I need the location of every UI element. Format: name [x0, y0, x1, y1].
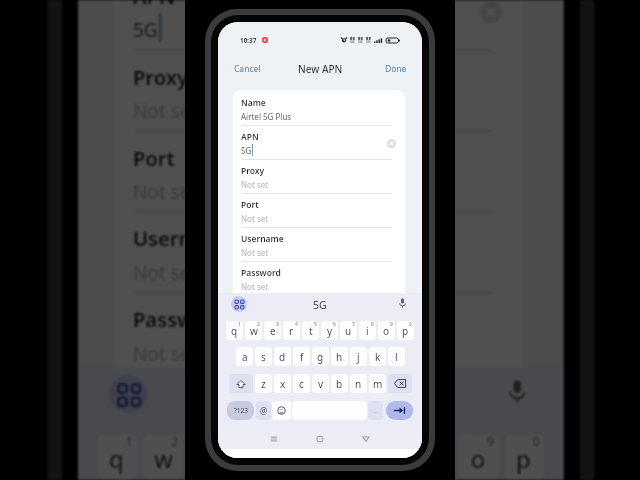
button[interactable]: d [274, 347, 291, 366]
staticText: r [247, 442, 259, 475]
button[interactable]: Emoji [272, 401, 291, 420]
button[interactable]: Enter [386, 401, 413, 420]
staticText: 5G [133, 16, 159, 42]
staticText: Proxy [241, 165, 265, 177]
staticText: k [375, 350, 381, 364]
staticText: y [327, 324, 333, 338]
staticText: s [261, 350, 266, 364]
staticText: 0 [533, 434, 540, 451]
staticText: 7 [397, 434, 404, 451]
button[interactable]: n [350, 374, 367, 393]
button[interactable]: l [388, 347, 405, 366]
staticText: @ [260, 405, 268, 416]
button[interactable]: j [350, 347, 367, 366]
staticText: 10:37 [240, 36, 257, 45]
button[interactable]: t [302, 321, 319, 340]
staticText: 2 [171, 434, 178, 451]
button[interactable]: h [331, 347, 348, 366]
staticText: a [242, 350, 248, 364]
button[interactable]: f [293, 347, 310, 366]
button[interactable]: u [340, 321, 357, 340]
button[interactable]: APN [114, 0, 523, 51]
button[interactable]: s [255, 347, 272, 366]
button[interactable]: w [245, 321, 262, 340]
button[interactable]: u [368, 434, 409, 480]
button[interactable]: k [369, 347, 386, 366]
button[interactable]: o [459, 434, 499, 480]
staticText: Not set [133, 339, 199, 365]
staticText: 3 [216, 434, 223, 451]
button[interactable]: Port [114, 132, 523, 213]
button[interactable]: Proxy [114, 51, 523, 132]
button[interactable]: r [283, 321, 300, 340]
button[interactable]: Keyboard settings [231, 296, 247, 312]
button[interactable]: y [321, 321, 338, 340]
button[interactable]: Proxy [233, 160, 405, 194]
staticText: o [383, 324, 390, 338]
button[interactable]: Port [233, 194, 405, 228]
button[interactable]: b [331, 374, 348, 393]
button[interactable]: c [293, 374, 310, 393]
button[interactable]: @ [256, 401, 271, 420]
button[interactable]: w [142, 434, 183, 480]
staticText: Cancel [234, 63, 261, 75]
button[interactable]: m [369, 374, 386, 393]
staticText: Not set [241, 179, 269, 190]
button[interactable]: Done [375, 57, 422, 81]
staticText: c [299, 377, 304, 391]
button[interactable]: Shift [229, 374, 253, 393]
button[interactable]: ?123 [227, 401, 254, 420]
button[interactable]: Name [233, 92, 405, 126]
staticText: Done [385, 63, 407, 75]
button[interactable]: Cancel [218, 57, 271, 81]
staticText: Username [133, 225, 235, 254]
staticText: Proxy [133, 63, 190, 92]
button[interactable]: g [312, 347, 329, 366]
staticText: b [336, 377, 343, 391]
other: Voice input [399, 298, 406, 308]
button[interactable]: p [397, 321, 414, 340]
staticText: u [345, 324, 352, 338]
button[interactable]: Username [233, 228, 405, 262]
button[interactable]: z [255, 374, 272, 393]
button[interactable]: o [378, 321, 395, 340]
staticText: j [357, 350, 360, 364]
staticText: 5G [304, 380, 337, 413]
button[interactable]: r [233, 434, 273, 480]
staticText: 6 [333, 321, 336, 328]
staticText: 5G [241, 145, 252, 156]
staticText: p [402, 324, 409, 338]
staticText: l [395, 350, 398, 364]
button[interactable]: p [504, 434, 545, 480]
button[interactable]: y [323, 434, 364, 480]
button[interactable]: Keyboard settings [109, 375, 147, 413]
staticText: Password [133, 306, 228, 335]
button[interactable]: e [188, 434, 228, 480]
button[interactable]: i [414, 434, 454, 480]
button[interactable]: q [226, 321, 243, 340]
other: Clear text [478, 0, 504, 25]
staticText: w [250, 324, 258, 338]
button[interactable]: APN [233, 126, 405, 160]
button[interactable]: Back [356, 430, 376, 447]
button[interactable]: Home [310, 430, 330, 447]
button[interactable]: t [278, 434, 319, 480]
staticText: q [109, 442, 126, 475]
button[interactable]: Password [233, 262, 405, 296]
staticText: 3 [276, 321, 279, 328]
button[interactable]: a [236, 347, 253, 366]
staticText: t [309, 324, 313, 338]
button[interactable]: Username [114, 213, 523, 294]
button[interactable]: Backspace [388, 374, 412, 393]
button[interactable]: Recent apps [264, 430, 284, 447]
staticText: New APN [298, 62, 343, 76]
button[interactable]: x [274, 374, 291, 393]
button[interactable]: i [359, 321, 376, 340]
button[interactable]: e [264, 321, 281, 340]
button[interactable]: q [97, 434, 138, 480]
button[interactable]: Password [114, 294, 523, 375]
button[interactable]: v [312, 374, 329, 393]
